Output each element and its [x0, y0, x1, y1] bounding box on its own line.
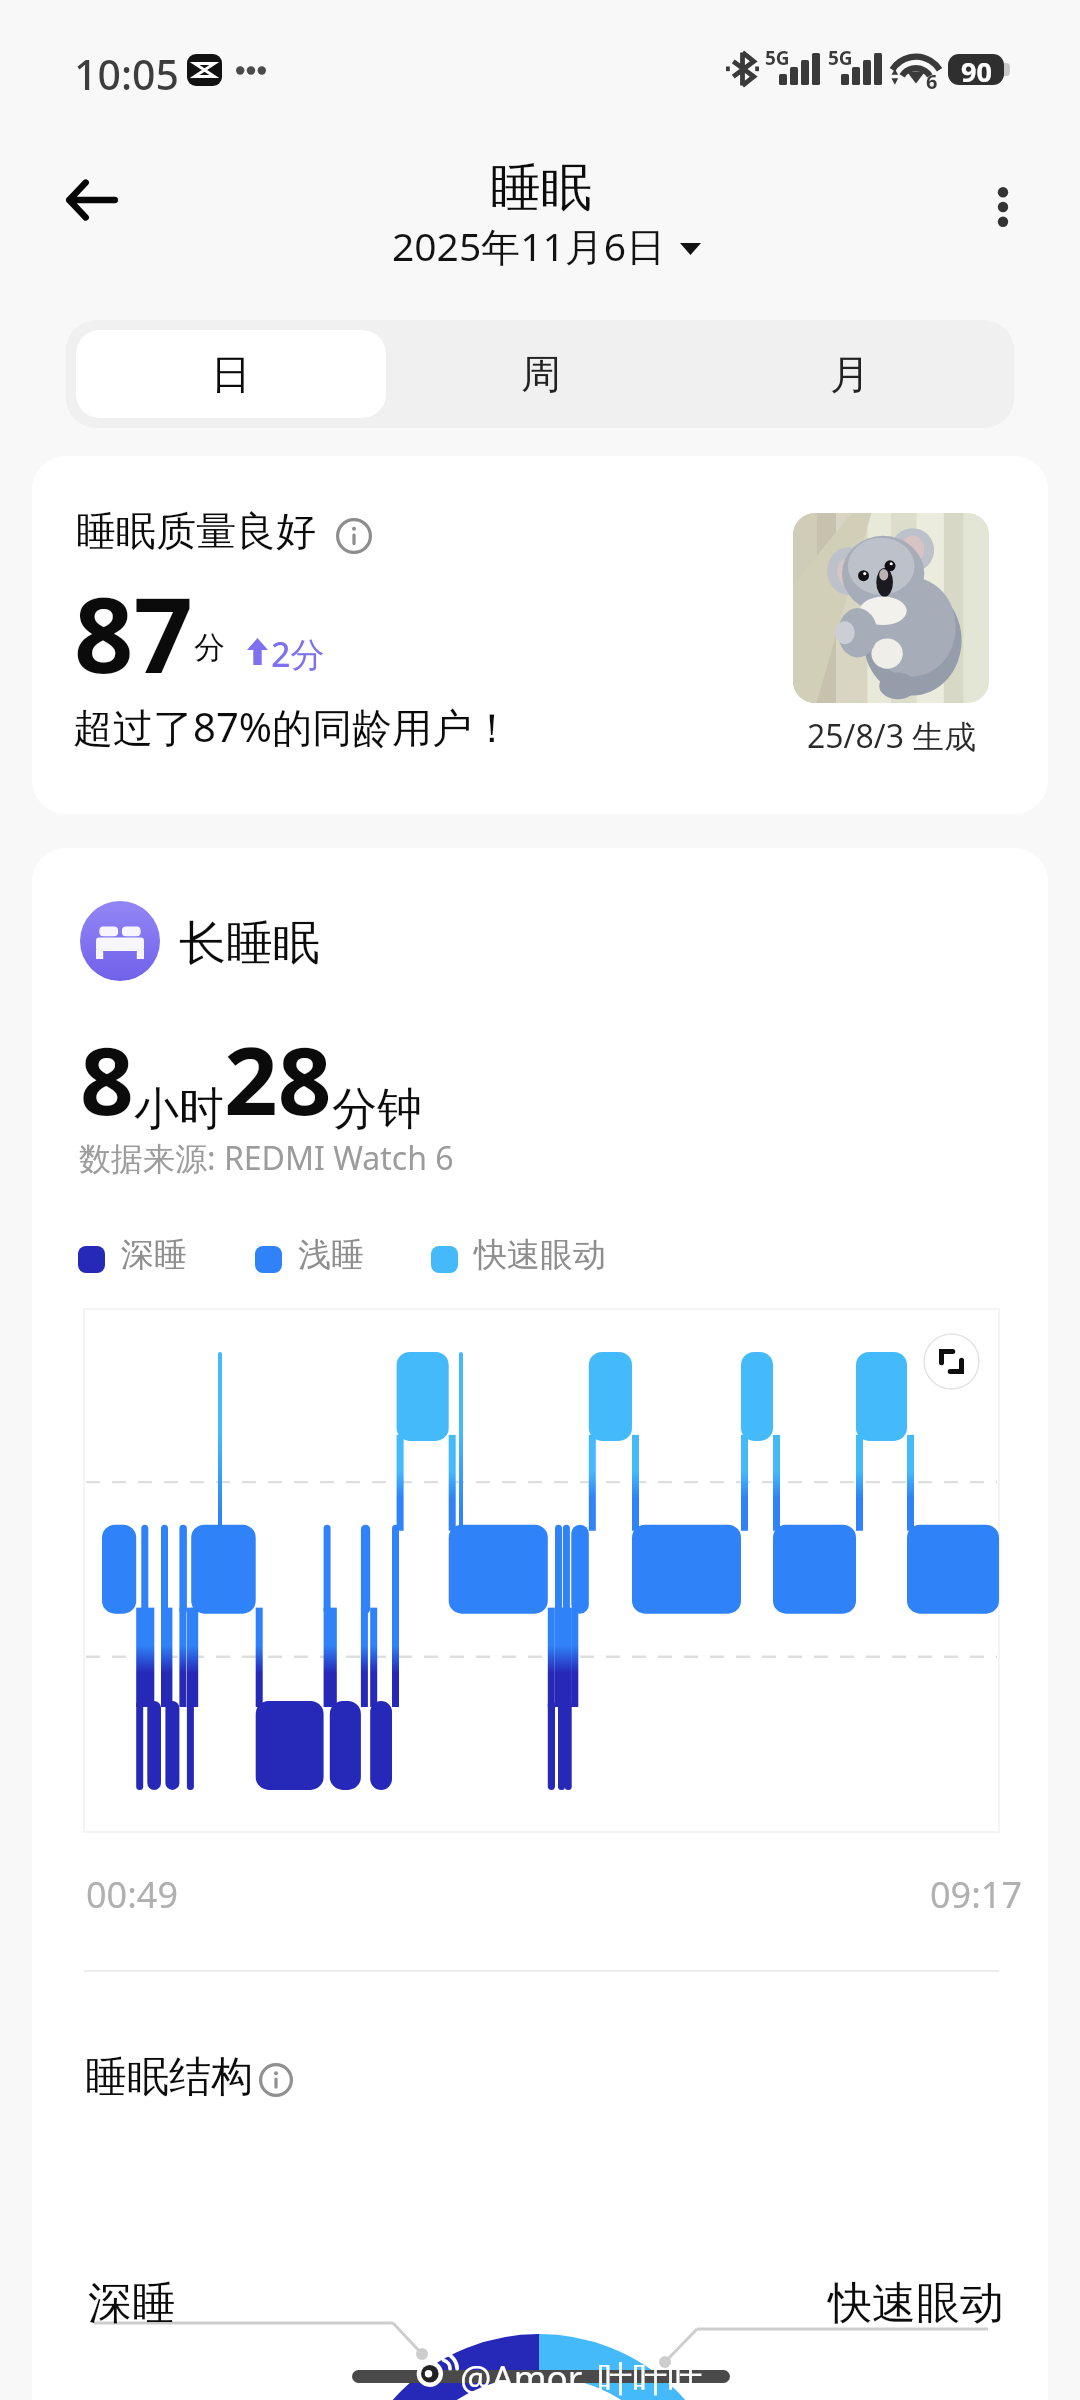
button[interactable]: Expand chart	[923, 1333, 980, 1390]
button[interactable]: 浅睡	[255, 1234, 364, 1276]
staticText: 超过了87%的同龄用户！	[73, 699, 512, 754]
staticText: 快速眼动	[828, 2276, 1004, 2331]
staticText: 2分	[271, 631, 325, 677]
staticText: @Amor_叶叶叶	[460, 2354, 703, 2400]
staticText: 浅睡	[298, 1234, 364, 1276]
staticText: 90	[961, 53, 992, 84]
staticText: 00:49	[86, 1870, 179, 1919]
staticText: 25/8/3 生成	[807, 714, 977, 758]
staticText: 09:17	[930, 1870, 1023, 1919]
button[interactable]: 日	[76, 330, 386, 418]
staticText: 睡眠	[490, 156, 592, 220]
staticText: 周	[521, 349, 561, 399]
staticText: 28	[224, 1015, 332, 1143]
staticText: 睡眠质量良好	[76, 506, 316, 556]
button[interactable]: 25/8/3 生成	[781, 502, 999, 758]
button[interactable]: 月	[695, 330, 1004, 418]
staticText: 快速眼动	[474, 1234, 606, 1276]
button[interactable]: 2025年11月6日	[392, 219, 701, 272]
staticText: 87	[74, 562, 193, 704]
staticText: 6	[926, 68, 938, 95]
button[interactable]: 深睡	[78, 1234, 187, 1276]
staticText: 月	[830, 349, 870, 399]
button[interactable]: 睡眠质量良好	[32, 456, 1048, 814]
staticText: 睡眠结构	[85, 2051, 253, 2104]
button[interactable]: Back	[42, 158, 140, 242]
button[interactable]: 周	[386, 330, 695, 418]
staticText: 5G	[765, 45, 790, 71]
staticText: 小时	[134, 1081, 224, 1138]
staticText: 深睡	[88, 2276, 176, 2331]
staticText: 深睡	[121, 1234, 187, 1276]
staticText: 数据来源: REDMI Watch 6	[79, 1136, 454, 1180]
staticText: 分钟	[332, 1081, 422, 1138]
staticText: 5G	[828, 45, 853, 71]
staticText: 分	[194, 628, 225, 667]
button[interactable]: 快速眼动	[431, 1234, 606, 1276]
staticText: 长睡眠	[179, 914, 320, 973]
staticText: 日	[211, 349, 251, 399]
staticText: 2025年11月6日	[392, 219, 666, 272]
staticText: 10:05	[74, 46, 179, 102]
staticText: 8	[80, 1015, 134, 1143]
button[interactable]: More options	[962, 166, 1044, 248]
